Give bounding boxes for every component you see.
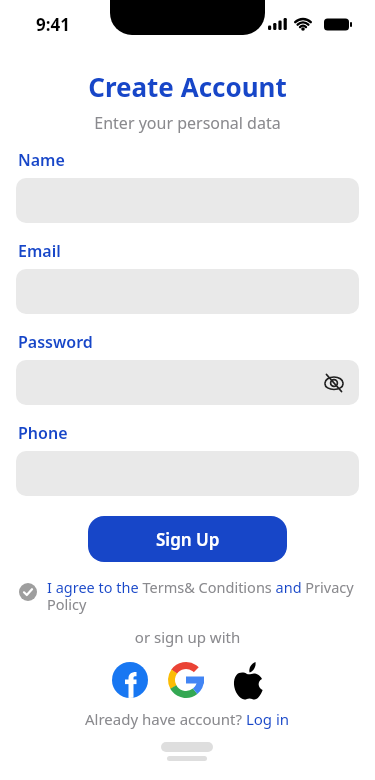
staticText: Phone [18, 422, 68, 444]
button[interactable] [323, 372, 345, 394]
staticText: Sign Up [156, 528, 220, 551]
staticText: Email [18, 240, 61, 262]
button[interactable] [168, 662, 204, 698]
button[interactable] [228, 660, 266, 700]
staticText: or sign up with [0, 627, 375, 647]
button[interactable] [16, 360, 359, 405]
button[interactable]: Sign Up [88, 516, 287, 562]
staticText: Password [18, 331, 93, 353]
button[interactable] [112, 662, 148, 698]
staticText: Create Account [0, 69, 375, 104]
staticText: Name [18, 149, 65, 171]
staticText: Enter your personal data [0, 112, 375, 134]
staticText: 9:41 [36, 13, 70, 36]
button[interactable]: Already have account? Log in [85, 709, 290, 729]
staticText: I agree to the Terms& Conditions and Pri… [47, 577, 369, 614]
button[interactable]: I agree to the Terms& Conditions and Pri… [19, 580, 369, 617]
